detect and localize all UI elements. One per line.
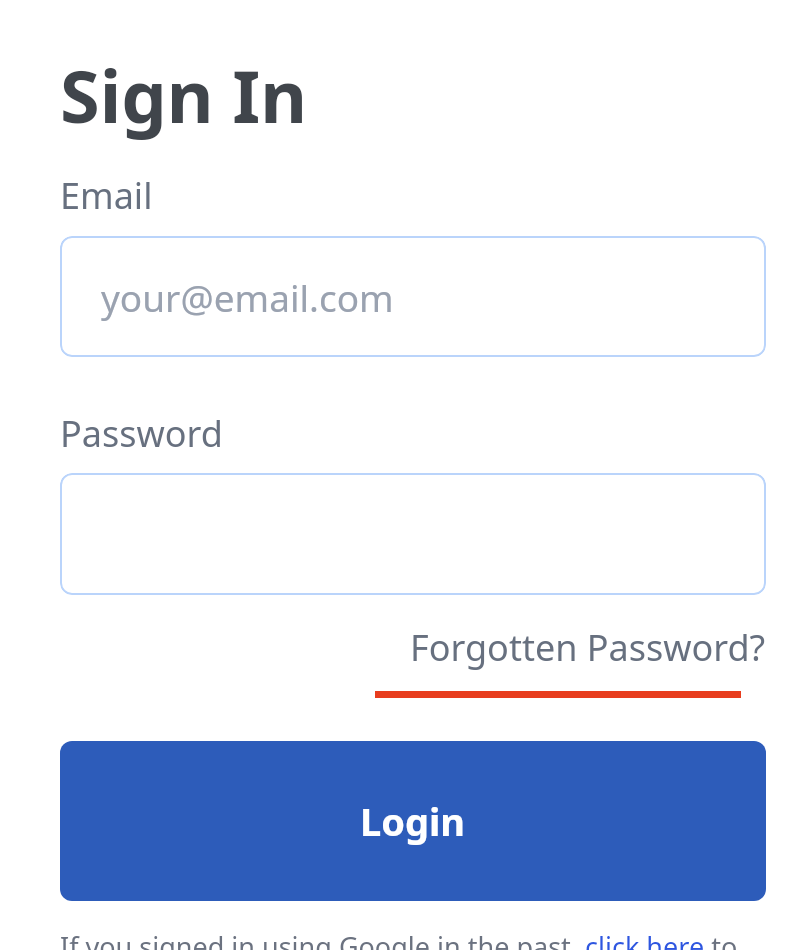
- button[interactable]: Login: [60, 741, 766, 901]
- button[interactable]: your@email.com: [60, 236, 766, 357]
- button[interactable]: [60, 473, 766, 595]
- staticText: Sign In: [60, 46, 308, 144]
- staticText: Forgotten Password?: [410, 623, 766, 672]
- button[interactable]: Forgotten Password?: [410, 623, 766, 672]
- staticText: your@email.com: [101, 272, 394, 322]
- staticText: Email: [60, 171, 153, 220]
- staticText: Password: [60, 409, 223, 458]
- button[interactable]: If you signed in using Google in the pas…: [60, 928, 738, 950]
- staticText: Login: [360, 795, 466, 847]
